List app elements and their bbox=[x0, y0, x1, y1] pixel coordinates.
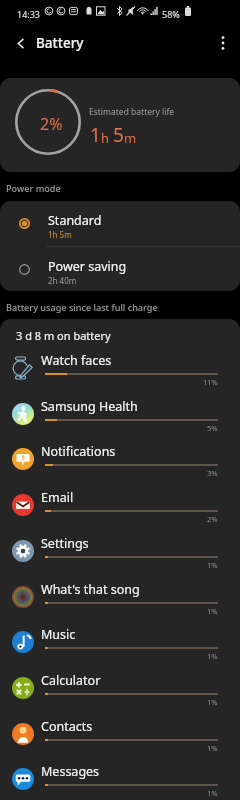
staticText: 1% bbox=[207, 651, 218, 661]
staticText: 1% bbox=[207, 788, 218, 798]
button[interactable]: Power saving bbox=[0, 247, 240, 292]
staticText: 2% bbox=[207, 514, 218, 524]
staticText: Power mode bbox=[6, 182, 61, 194]
staticText: 2% bbox=[40, 113, 63, 135]
button[interactable]: What's that song bbox=[0, 569, 240, 615]
button[interactable]: Email bbox=[0, 477, 240, 523]
button[interactable]: Navigate up bbox=[0, 25, 42, 61]
button[interactable]: Notifications bbox=[0, 431, 240, 477]
staticText: 1% bbox=[207, 560, 218, 570]
staticText: Settings bbox=[41, 535, 89, 552]
staticText: Samsung Health bbox=[41, 398, 138, 415]
button[interactable]: Samsung Health bbox=[0, 386, 240, 432]
button[interactable]: Calculator bbox=[0, 660, 240, 706]
button[interactable]: Music bbox=[0, 614, 240, 660]
staticText: Battery bbox=[36, 34, 84, 52]
staticText: h bbox=[101, 129, 110, 147]
button[interactable]: More options bbox=[204, 25, 240, 61]
button[interactable]: Settings bbox=[0, 523, 240, 569]
staticText: What's that song bbox=[41, 581, 140, 598]
staticText: 1% bbox=[207, 606, 218, 616]
staticText: 11% bbox=[203, 377, 218, 387]
staticText: 3 d 8 m on battery bbox=[16, 328, 111, 343]
staticText: 1% bbox=[207, 697, 218, 707]
staticText: Battery usage since last full charge bbox=[6, 301, 158, 313]
staticText: 58% bbox=[162, 8, 180, 20]
staticText: 1 bbox=[90, 122, 101, 148]
staticText: Notifications bbox=[41, 443, 116, 460]
staticText: 5% bbox=[207, 423, 218, 433]
staticText: 1h 5m bbox=[48, 229, 72, 240]
staticText: Email bbox=[41, 489, 74, 506]
button[interactable]: Standard bbox=[0, 201, 240, 246]
button[interactable]: Messages bbox=[0, 751, 240, 797]
staticText: Watch faces bbox=[41, 352, 112, 369]
staticText: 1% bbox=[207, 743, 218, 753]
button[interactable]: Watch faces bbox=[0, 340, 240, 386]
staticText: 2h 40m bbox=[48, 275, 77, 286]
staticText: Contacts bbox=[41, 718, 93, 735]
staticText: Power saving bbox=[48, 258, 127, 275]
staticText: Music bbox=[41, 626, 76, 643]
staticText: Calculator bbox=[41, 672, 101, 689]
button[interactable]: Contacts bbox=[0, 706, 240, 752]
staticText: 3% bbox=[207, 468, 218, 478]
staticText: Messages bbox=[41, 763, 100, 780]
staticText: Estimated battery life bbox=[89, 106, 175, 118]
staticText: 5 bbox=[113, 122, 124, 148]
staticText: m bbox=[124, 129, 137, 147]
staticText: Standard bbox=[48, 212, 102, 229]
staticText: 14:33 bbox=[17, 8, 41, 20]
